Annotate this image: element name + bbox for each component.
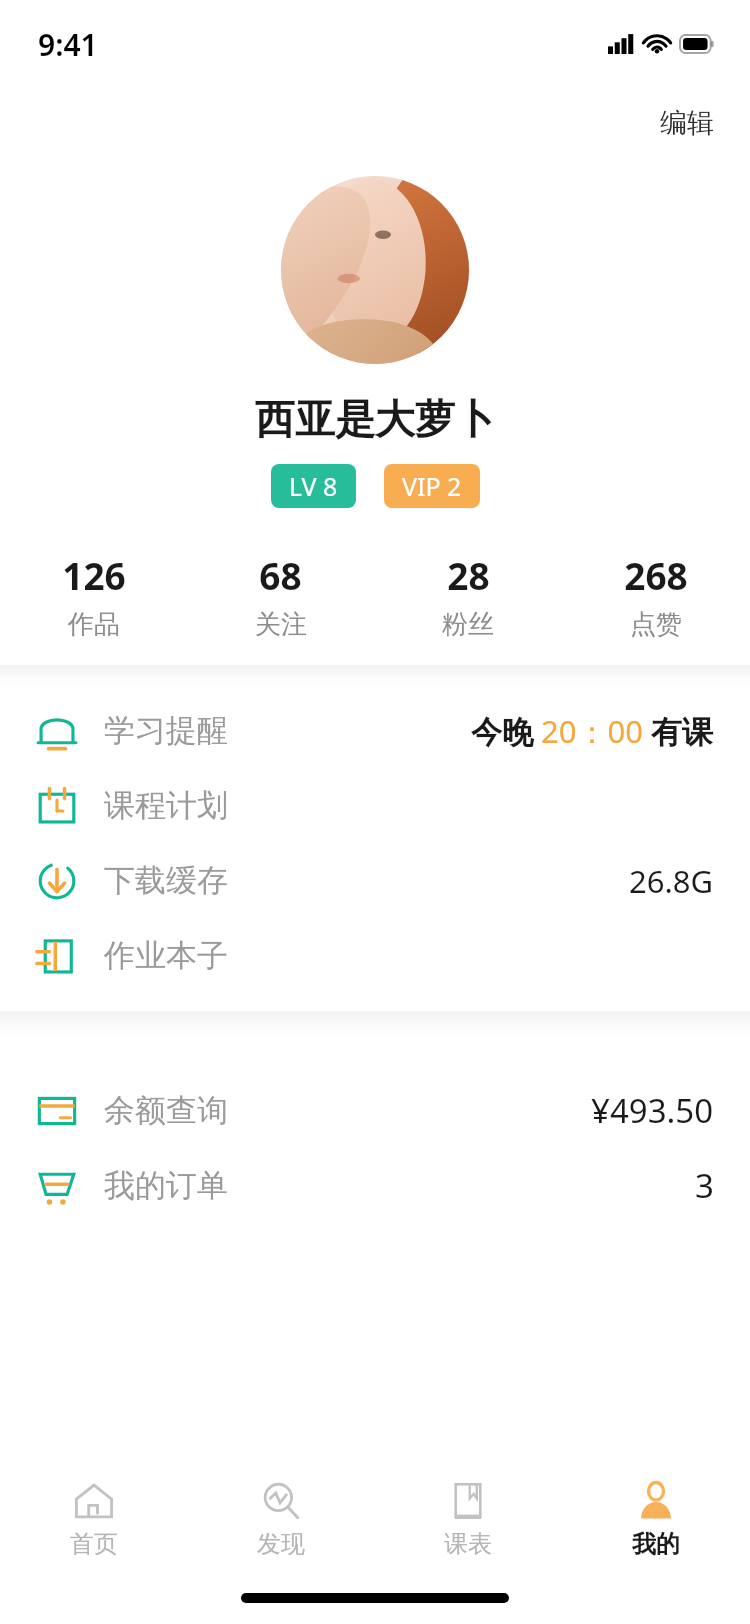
staticText: 发现: [257, 1529, 305, 1559]
button[interactable]: 学习提醒: [0, 693, 750, 768]
staticText: 我的订单: [104, 1166, 228, 1205]
staticText: 126: [62, 550, 126, 600]
staticText: 首页: [70, 1529, 118, 1559]
button[interactable]: 编辑: [648, 98, 726, 148]
staticText: 余额查询: [104, 1091, 228, 1130]
staticText: LV 8: [289, 469, 338, 503]
button[interactable]: Profile photo: [281, 176, 469, 364]
button[interactable]: 下载缓存: [0, 843, 750, 918]
staticText: 9:41: [38, 24, 98, 65]
staticText: VIP 2: [402, 469, 462, 503]
button[interactable]: 课程计划: [0, 768, 750, 843]
button[interactable]: 余额查询: [0, 1073, 750, 1148]
button[interactable]: 课表: [374, 1475, 562, 1563]
button[interactable]: 126: [0, 546, 187, 645]
staticText: 28: [447, 550, 490, 600]
button[interactable]: LV 8: [271, 464, 356, 508]
staticText: 学习提醒: [104, 711, 228, 750]
button[interactable]: 首页: [0, 1475, 187, 1563]
staticText: 3: [695, 1163, 714, 1208]
button[interactable]: 68: [187, 546, 374, 645]
staticText: 作业本子: [104, 936, 228, 975]
staticText: 我的: [632, 1529, 680, 1559]
staticText: 下载缓存: [104, 861, 228, 900]
button[interactable]: 28: [374, 546, 562, 645]
button[interactable]: VIP 2: [384, 464, 480, 508]
staticText: 作品: [68, 608, 120, 641]
staticText: 今晚 20：00 有课: [471, 710, 714, 752]
staticText: 课程计划: [104, 786, 228, 825]
staticText: 268: [624, 550, 688, 600]
staticText: 西亚是大萝卜: [255, 394, 495, 444]
staticText: 68: [259, 550, 302, 600]
staticText: 关注: [255, 608, 307, 641]
staticText: 编辑: [660, 106, 714, 140]
staticText: ¥493.50: [591, 1088, 714, 1133]
staticText: 26.8G: [629, 860, 714, 902]
staticText: 课表: [444, 1529, 492, 1559]
button[interactable]: 我的订单: [0, 1148, 750, 1223]
button[interactable]: 发现: [187, 1475, 374, 1563]
staticText: 粉丝: [442, 608, 494, 641]
button[interactable]: 我的: [562, 1475, 750, 1563]
staticText: 点赞: [630, 608, 682, 641]
button[interactable]: 作业本子: [0, 918, 750, 993]
button[interactable]: 268: [562, 546, 750, 645]
